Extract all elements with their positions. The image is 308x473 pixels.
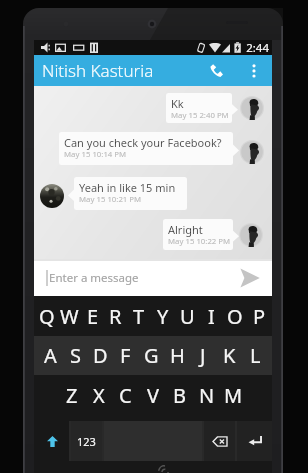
button[interactable]: Y bbox=[151, 296, 175, 336]
staticText: Can you check your Facebook? bbox=[64, 135, 222, 150]
staticText: T bbox=[133, 303, 145, 330]
staticText: W bbox=[60, 303, 79, 330]
button[interactable]: E bbox=[81, 296, 104, 336]
staticText: F bbox=[120, 342, 131, 369]
staticText: J bbox=[200, 342, 206, 369]
button[interactable]: X bbox=[85, 375, 112, 416]
button[interactable]: K bbox=[216, 336, 242, 375]
button[interactable]: O bbox=[223, 296, 247, 336]
staticText: Yeah in like 15 min bbox=[79, 180, 176, 195]
staticText: E bbox=[87, 303, 99, 330]
staticText: O bbox=[227, 303, 243, 330]
button[interactable]: D bbox=[88, 336, 113, 375]
staticText: K bbox=[223, 342, 236, 369]
button[interactable]: C bbox=[112, 375, 139, 416]
staticText: Y bbox=[157, 303, 169, 330]
button[interactable]: Can you check your Facebook? bbox=[59, 132, 233, 165]
staticText: P bbox=[253, 303, 266, 330]
button[interactable]: L bbox=[242, 336, 268, 375]
button[interactable]: M bbox=[220, 375, 247, 416]
staticText: V bbox=[147, 382, 159, 409]
staticText: May 15 10:14 PM bbox=[64, 149, 127, 160]
button[interactable]: J bbox=[190, 336, 216, 375]
staticText: May 15 2:40 PM bbox=[171, 110, 229, 121]
staticText: Z bbox=[66, 382, 78, 409]
button[interactable]: R bbox=[104, 296, 127, 336]
button[interactable]: B bbox=[166, 375, 193, 416]
button[interactable]: F bbox=[113, 336, 138, 375]
button[interactable]: 123 bbox=[71, 421, 102, 461]
staticText: R bbox=[109, 303, 122, 330]
button[interactable]: Contact photo bbox=[240, 140, 264, 164]
staticText: May 15 10:22 PM bbox=[168, 236, 231, 247]
button[interactable]: Yeah in like 15 min bbox=[74, 177, 187, 210]
staticText: H bbox=[170, 342, 185, 369]
button[interactable]: I bbox=[199, 296, 223, 336]
staticText: I bbox=[208, 303, 215, 330]
button[interactable]: Z bbox=[59, 375, 85, 416]
button[interactable]: Alright bbox=[163, 219, 233, 250]
button[interactable]: A bbox=[38, 336, 63, 375]
button[interactable]: H bbox=[164, 336, 190, 375]
staticText: C bbox=[119, 382, 132, 409]
button[interactable]: Backspace bbox=[204, 421, 235, 461]
staticText: S bbox=[70, 342, 81, 369]
button[interactable]: Kk bbox=[166, 93, 232, 123]
staticText: D bbox=[93, 342, 108, 369]
button[interactable]: Enter bbox=[237, 421, 272, 461]
button[interactable]: Q bbox=[35, 296, 58, 336]
staticText: 123 bbox=[77, 434, 96, 449]
button[interactable]: Contact photo bbox=[239, 223, 263, 247]
staticText: A bbox=[44, 342, 57, 369]
button[interactable]: Contact photo bbox=[40, 184, 64, 208]
button[interactable]: Send bbox=[230, 259, 270, 296]
button[interactable]: Shift bbox=[34, 421, 70, 461]
staticText: U bbox=[180, 303, 195, 330]
staticText: G bbox=[144, 342, 159, 369]
staticText: X bbox=[93, 382, 105, 409]
staticText: Alright bbox=[168, 222, 203, 237]
staticText: N bbox=[199, 382, 215, 409]
staticText: 2:44 bbox=[246, 40, 269, 55]
button[interactable]: S bbox=[63, 336, 88, 375]
staticText: M bbox=[224, 382, 243, 409]
staticText: Q bbox=[39, 303, 55, 330]
button[interactable]: Contact photo bbox=[240, 96, 264, 120]
button[interactable]: T bbox=[127, 296, 151, 336]
button[interactable]: Call bbox=[198, 55, 235, 86]
button[interactable]: G bbox=[138, 336, 164, 375]
button[interactable]: P bbox=[247, 296, 271, 336]
staticText: Enter a message bbox=[49, 270, 139, 286]
button[interactable]: U bbox=[175, 296, 199, 336]
staticText: Kk bbox=[171, 96, 184, 111]
staticText: Nitish Kasturia bbox=[42, 59, 154, 82]
button[interactable]: N bbox=[193, 375, 220, 416]
staticText: L bbox=[250, 342, 261, 369]
button[interactable]: More options bbox=[237, 55, 270, 86]
button[interactable]: V bbox=[139, 375, 166, 416]
staticText: May 15 10:21 PM bbox=[79, 194, 142, 205]
staticText: B bbox=[173, 382, 186, 409]
button[interactable]: W bbox=[58, 296, 81, 336]
